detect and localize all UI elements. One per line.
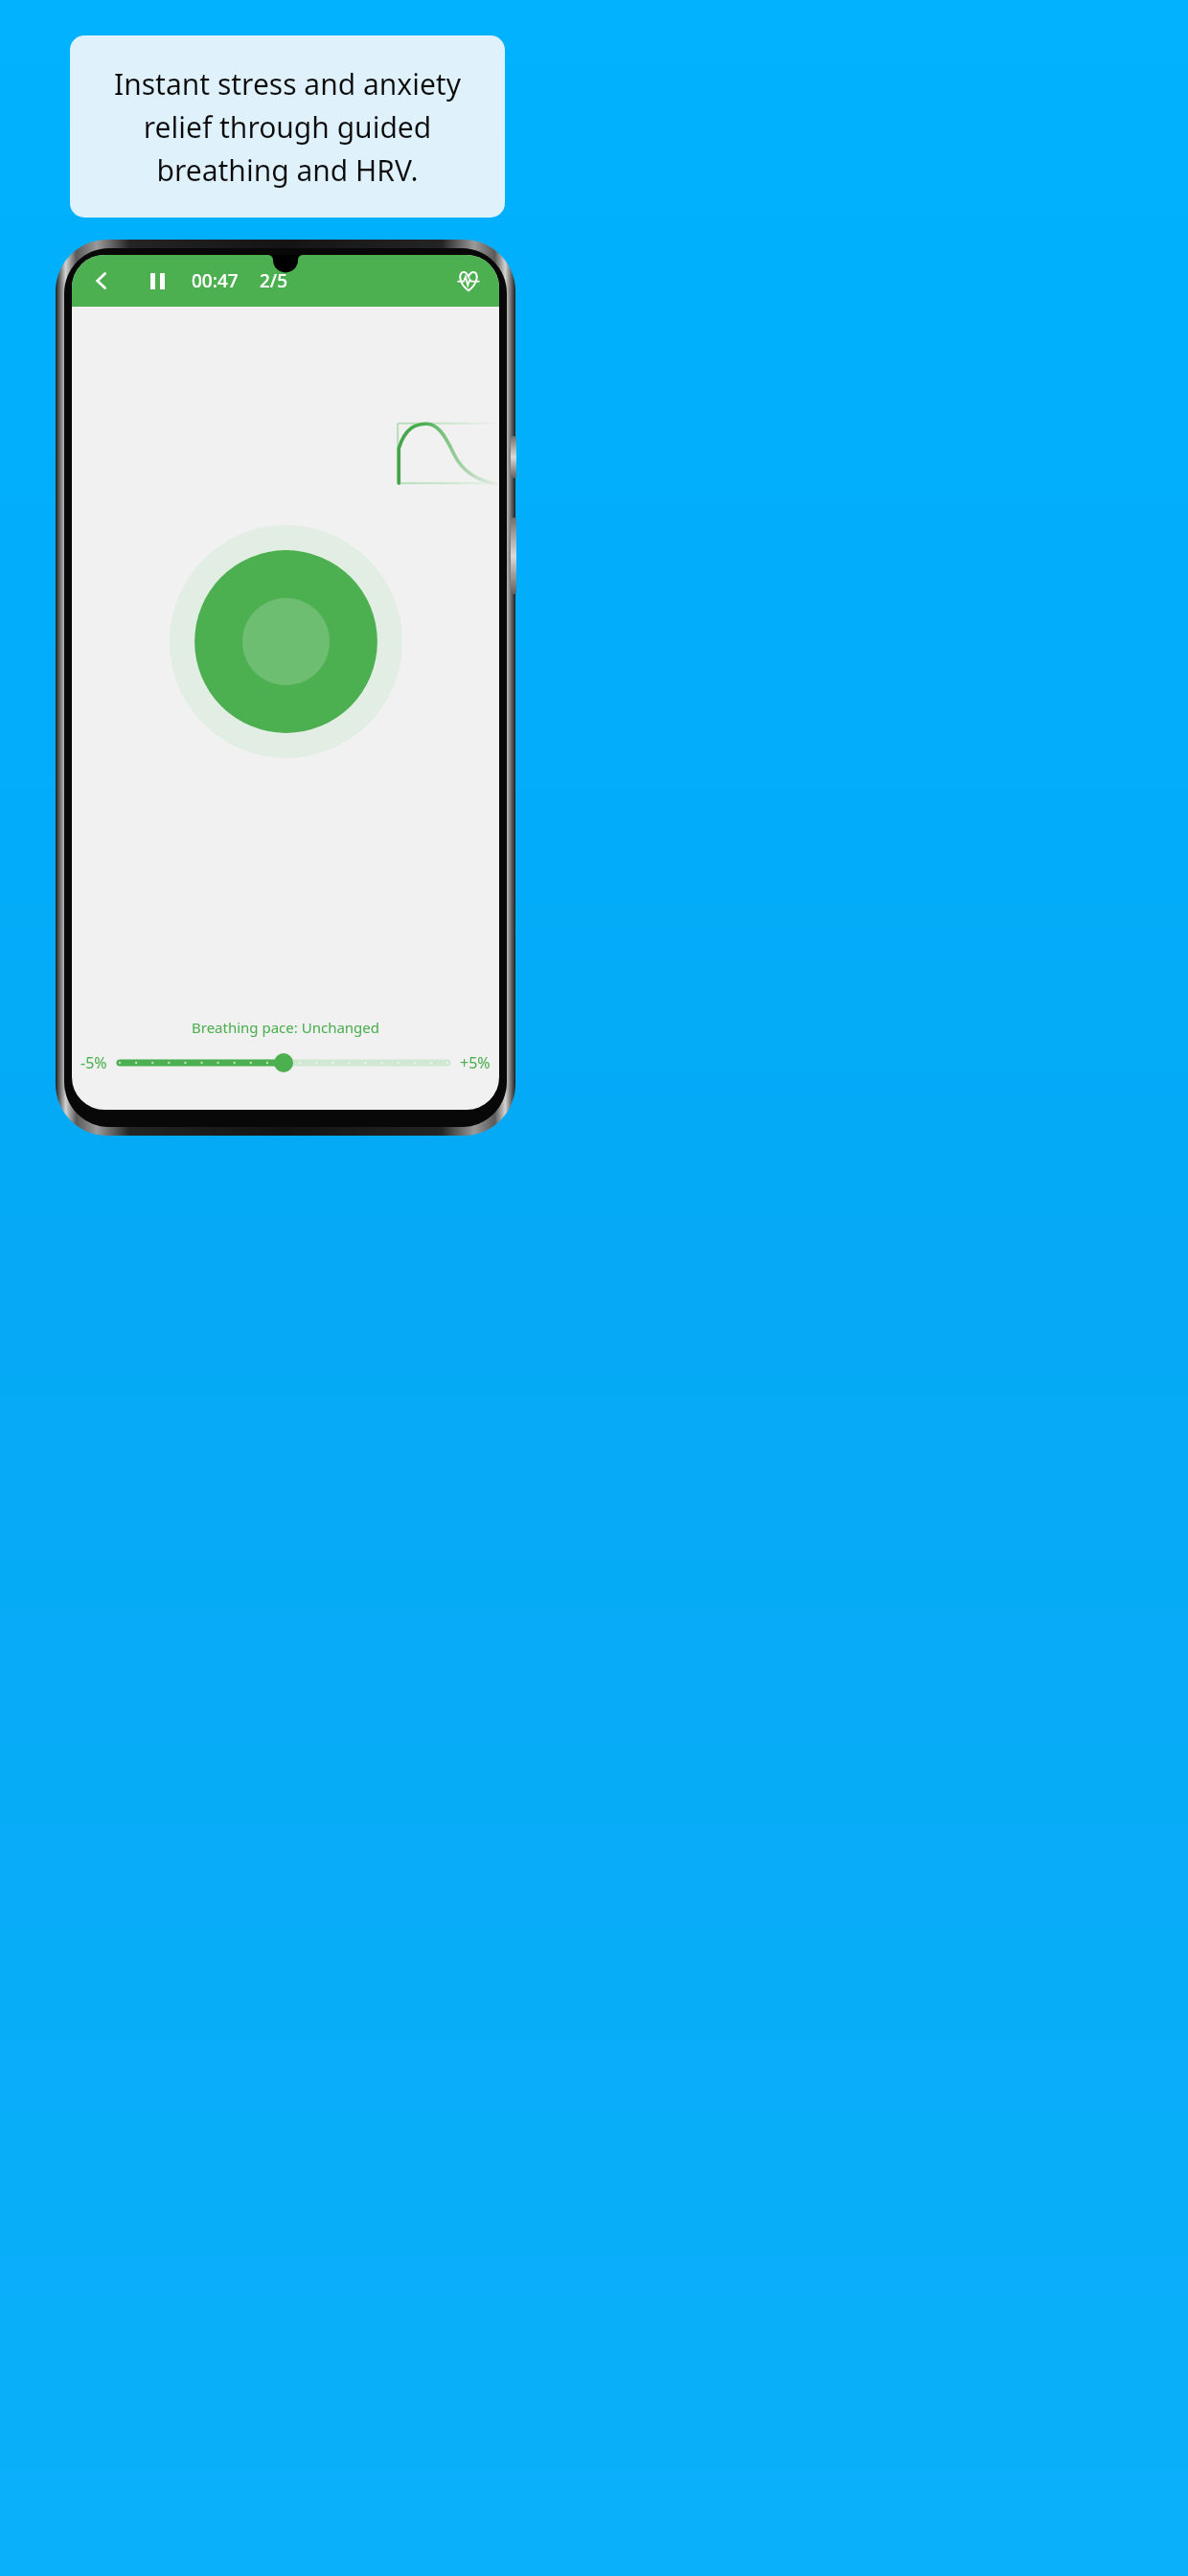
staticText: Breathing pace: Unchanged — [192, 1018, 379, 1037]
staticText: -5% — [80, 1052, 107, 1073]
staticText: Instant stress and anxiety relief throug… — [85, 64, 490, 190]
button[interactable] — [120, 1047, 447, 1078]
button[interactable]: Pause — [140, 264, 174, 298]
staticText: 00:47 — [192, 268, 239, 293]
button[interactable]: Back — [84, 264, 119, 298]
staticText: +5% — [460, 1052, 491, 1073]
staticText: 2/5 — [260, 268, 288, 293]
button[interactable]: Heart rate — [450, 263, 487, 299]
